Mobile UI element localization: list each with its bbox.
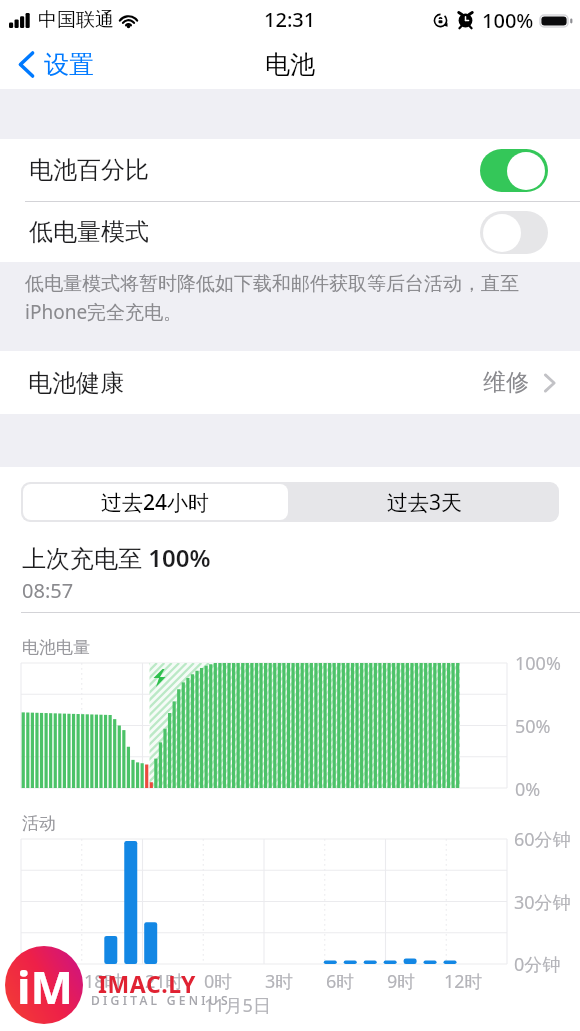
staticText: 电池健康 <box>28 368 124 398</box>
staticText: 维修 <box>483 368 529 397</box>
staticText: 低电量模式将暂时降低如下载和邮件获取等后台活动，直至 iPhone完全充电。 <box>25 272 519 325</box>
staticText: 0时 <box>204 969 233 994</box>
staticText: 电池百分比 <box>29 155 149 185</box>
other: Battery full <box>540 14 573 28</box>
staticText: 电池 <box>265 49 315 80</box>
staticText: 12时 <box>444 969 483 994</box>
staticText: 过去3天 <box>387 488 463 517</box>
staticText: 设置 <box>44 49 94 80</box>
button[interactable]: 电池百分比 <box>0 139 580 201</box>
staticText: 30分钟 <box>514 890 571 915</box>
staticText: 过去24小时 <box>101 488 210 517</box>
staticText: 活动 <box>22 813 56 834</box>
other: Alarm <box>457 12 474 29</box>
button[interactable]: Switch on <box>480 149 548 192</box>
staticText: 低电量模式 <box>29 217 149 247</box>
button[interactable]: 过去24小时 <box>23 484 288 520</box>
other: Rotation lock <box>433 13 448 28</box>
button[interactable]: Switch off <box>480 211 548 254</box>
button[interactable]: 过去3天 <box>290 482 559 522</box>
staticText: DIGITAL GENIUS <box>91 992 231 1008</box>
staticText: 60分钟 <box>514 827 571 852</box>
staticText: 50% <box>515 714 551 739</box>
staticText: 上次充电至 100% <box>22 541 211 574</box>
staticText: 08:57 <box>22 577 74 604</box>
staticText: 0分钟 <box>514 952 561 977</box>
button[interactable]: 低电量模式 <box>0 202 580 262</box>
staticText: 0% <box>515 777 541 802</box>
button[interactable]: Back to 设置 <box>0 43 106 86</box>
staticText: 中国联通 <box>38 8 114 32</box>
staticText: 11月5日 <box>204 993 271 1018</box>
staticText: 100% <box>515 651 561 676</box>
staticText: 100% <box>482 7 534 34</box>
staticText: iM <box>17 956 73 1017</box>
staticText: IMAC.LY <box>98 968 197 999</box>
staticText: 21时 <box>145 969 184 994</box>
staticText: 3时 <box>265 969 294 994</box>
staticText: 9时 <box>387 969 416 994</box>
staticText: 电池电量 <box>22 637 90 658</box>
button[interactable]: 电池健康 <box>0 351 580 414</box>
staticText: 18时 <box>84 969 123 994</box>
staticText: 6时 <box>326 969 355 994</box>
staticText: 12:31 <box>264 6 316 33</box>
